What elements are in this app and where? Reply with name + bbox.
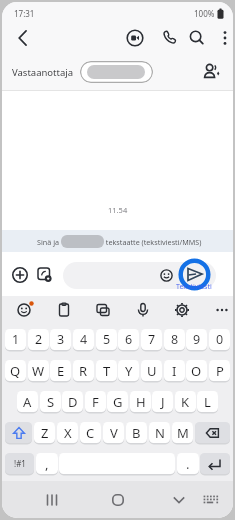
button[interactable]: Q <box>5 360 26 381</box>
button[interactable]: V <box>103 422 124 443</box>
button[interactable]: 1 <box>5 329 26 350</box>
staticText: Sinä ja <box>37 237 61 247</box>
button[interactable] <box>54 300 74 320</box>
button[interactable]: B <box>126 422 147 443</box>
button[interactable]: K <box>175 391 196 412</box>
button[interactable]: C <box>80 422 101 443</box>
button[interactable] <box>212 300 232 320</box>
button[interactable]: 9 <box>186 329 207 350</box>
button[interactable] <box>12 27 34 49</box>
button[interactable]: , <box>36 453 58 474</box>
button[interactable] <box>178 258 211 291</box>
button[interactable]: R <box>73 360 94 381</box>
button[interactable] <box>125 28 145 48</box>
button[interactable]: Z <box>34 422 55 443</box>
staticText: E <box>57 362 65 380</box>
button[interactable]: 8 <box>164 329 185 350</box>
button[interactable] <box>195 422 230 443</box>
staticText: B <box>132 424 141 442</box>
button[interactable] <box>158 28 178 48</box>
button[interactable]: 2 <box>28 329 49 350</box>
button[interactable]: E <box>50 360 71 381</box>
button[interactable]: U <box>141 360 162 381</box>
staticText: K <box>181 393 190 411</box>
staticText: 0 <box>216 331 224 348</box>
button[interactable] <box>12 267 28 283</box>
button[interactable] <box>200 453 230 474</box>
button[interactable]: T <box>96 360 117 381</box>
button[interactable]: P <box>209 360 230 381</box>
staticText: . <box>186 455 190 473</box>
button[interactable]: S <box>40 391 61 412</box>
button[interactable]: . <box>177 453 199 474</box>
button[interactable] <box>169 490 189 510</box>
staticText: !#1 <box>14 458 26 469</box>
button[interactable]: M <box>172 422 193 443</box>
staticText: 7 <box>148 331 156 348</box>
staticText: Z <box>41 424 49 442</box>
staticText: D <box>68 393 78 411</box>
button[interactable]: H <box>130 391 151 412</box>
staticText: 17:31 <box>14 8 35 19</box>
staticText: J <box>161 393 165 411</box>
button[interactable]: Y <box>118 360 139 381</box>
button[interactable] <box>37 267 53 283</box>
button[interactable]: A <box>17 391 38 412</box>
staticText: 4 <box>80 331 88 348</box>
staticText: , <box>45 455 49 473</box>
button[interactable]: 7 <box>141 329 162 350</box>
button[interactable] <box>5 422 32 443</box>
button[interactable]: 6 <box>118 329 139 350</box>
button[interactable]: O <box>186 360 207 381</box>
staticText: I <box>172 362 177 380</box>
button[interactable]: L <box>197 391 218 412</box>
button[interactable] <box>202 62 222 82</box>
button[interactable]: I <box>164 360 185 381</box>
staticText: O <box>191 362 202 380</box>
staticText: 1 <box>12 331 20 348</box>
staticText: W <box>32 362 45 380</box>
button[interactable] <box>14 300 34 320</box>
staticText: Q <box>10 362 21 380</box>
staticText: P <box>216 362 224 380</box>
button[interactable] <box>201 491 219 509</box>
button[interactable]: 4 <box>73 329 94 350</box>
staticText: N <box>155 424 165 442</box>
button[interactable]: 0 <box>209 329 230 350</box>
button[interactable] <box>80 61 153 83</box>
staticText: 6 <box>125 331 133 348</box>
button[interactable] <box>187 28 207 48</box>
button[interactable]: X <box>57 422 78 443</box>
button[interactable]: 5 <box>96 329 117 350</box>
button[interactable] <box>42 490 62 510</box>
staticText: M <box>177 424 189 442</box>
button[interactable] <box>63 262 216 289</box>
staticText: U <box>147 362 157 380</box>
staticText: 11.54 <box>108 205 128 215</box>
button[interactable] <box>218 31 232 45</box>
staticText: F <box>92 393 99 411</box>
button[interactable]: J <box>152 391 173 412</box>
button[interactable] <box>108 490 128 510</box>
button[interactable]: W <box>28 360 49 381</box>
button[interactable] <box>172 300 192 320</box>
button[interactable] <box>160 269 173 282</box>
staticText: A <box>23 393 32 411</box>
button[interactable]: F <box>85 391 106 412</box>
staticText: C <box>86 424 95 442</box>
staticText: 3 <box>57 331 65 348</box>
staticText: S <box>47 393 55 411</box>
staticText: T <box>103 362 111 380</box>
button[interactable]: D <box>62 391 83 412</box>
button[interactable]: N <box>149 422 170 443</box>
button[interactable] <box>133 300 153 320</box>
staticText: R <box>79 362 88 380</box>
button[interactable]: !#1 <box>5 453 34 474</box>
button[interactable]: 3 <box>50 329 71 350</box>
button[interactable] <box>93 300 113 320</box>
staticText: Tekstiviesti <box>176 282 212 292</box>
staticText: 5 <box>103 331 111 348</box>
staticText: Y <box>125 362 133 380</box>
button[interactable]: G <box>107 391 128 412</box>
